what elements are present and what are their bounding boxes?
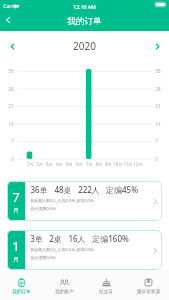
staticText: 7 bbox=[155, 138, 158, 144]
staticText: 有金额人数0人,人均0.0元,桌均0.0元 bbox=[30, 198, 94, 203]
staticText: 7 bbox=[12, 188, 20, 206]
button[interactable]: 1 bbox=[7, 230, 162, 270]
staticText: 2桌 bbox=[49, 233, 62, 244]
staticText: 21 bbox=[8, 103, 14, 109]
staticText: 48桌 bbox=[54, 184, 72, 195]
staticText: 月 bbox=[13, 207, 19, 214]
staticText: 2月 bbox=[36, 161, 43, 167]
staticText: 28 bbox=[8, 86, 14, 92]
staticText: 3单 bbox=[30, 233, 43, 244]
staticText: 4月 bbox=[56, 161, 63, 167]
staticText: 0 bbox=[11, 156, 14, 162]
staticText: 纪念日 bbox=[99, 289, 113, 295]
staticText: 14 bbox=[155, 121, 161, 127]
staticText: 10月 bbox=[113, 161, 123, 167]
staticText: 我的订单 bbox=[12, 289, 31, 295]
staticText: 有金额人数0人,人均0.0元,桌均0.0元 bbox=[30, 247, 94, 252]
button[interactable]: Previous year bbox=[0, 34, 24, 58]
staticText: 2020 bbox=[73, 39, 96, 53]
button[interactable]: 我的客户 bbox=[43, 271, 85, 300]
staticText: 0 bbox=[155, 156, 158, 162]
staticText: 合计消费0.0元 bbox=[30, 206, 56, 211]
staticText: 14 bbox=[8, 121, 14, 127]
staticText: 16人 bbox=[68, 233, 86, 244]
staticText: 定编45% bbox=[106, 184, 138, 195]
staticText: 7 bbox=[11, 138, 14, 144]
staticText: 7月 bbox=[86, 161, 93, 167]
staticText: 合计消费0.0元 bbox=[30, 255, 56, 260]
staticText: 222人 bbox=[78, 184, 100, 195]
button[interactable]: 婚庆室资源 bbox=[127, 271, 169, 300]
staticText: 28 bbox=[155, 86, 161, 92]
staticText: 我的订单 bbox=[67, 16, 102, 27]
staticText: 婚庆室资源 bbox=[137, 289, 160, 295]
staticText: 11月 bbox=[123, 161, 133, 167]
staticText: 8月 bbox=[96, 161, 103, 167]
staticText: Carrier bbox=[3, 3, 20, 10]
staticText: 1 bbox=[12, 237, 20, 255]
staticText: 月 bbox=[13, 256, 19, 263]
button[interactable]: 纪念日 bbox=[85, 271, 127, 300]
staticText: 9月 bbox=[105, 161, 112, 167]
button[interactable]: Back bbox=[0, 11, 16, 29]
staticText: 1月 bbox=[27, 161, 34, 167]
staticText: 我的客户 bbox=[55, 289, 74, 295]
button[interactable]: 我的订单 bbox=[0, 271, 43, 300]
button[interactable]: Next year bbox=[145, 34, 169, 58]
staticText: 定编160% bbox=[92, 233, 129, 244]
staticText: 35 bbox=[8, 68, 14, 74]
staticText: 21 bbox=[155, 103, 161, 109]
staticText: 12:10 AM bbox=[73, 3, 96, 10]
staticText: 36单 bbox=[30, 184, 48, 195]
staticText: 5月 bbox=[66, 161, 73, 167]
staticText: 12月 bbox=[133, 161, 143, 167]
button[interactable]: 7 bbox=[7, 181, 162, 221]
staticText: 35 bbox=[155, 68, 161, 74]
staticText: 3月 bbox=[46, 161, 53, 167]
staticText: 6月 bbox=[76, 161, 83, 167]
